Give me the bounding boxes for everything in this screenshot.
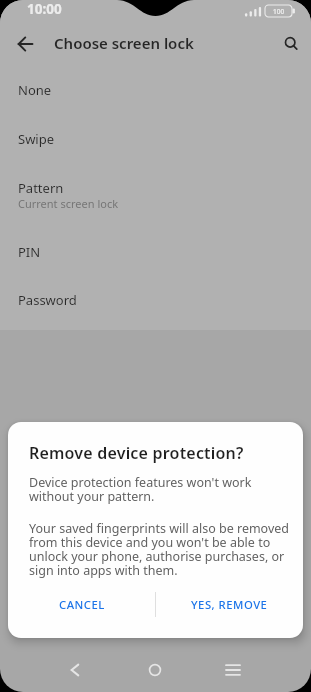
staticText: Swipe: [18, 130, 55, 148]
staticText: Device protection features won't work wi…: [29, 474, 252, 505]
staticText: YES, REMOVE: [191, 597, 268, 612]
staticText: Password: [18, 291, 77, 309]
staticText: Your saved fingerprints will also be rem…: [29, 520, 290, 579]
staticText: CANCEL: [59, 597, 105, 612]
staticText: Current screen lock: [18, 196, 119, 211]
staticText: 100: [273, 7, 285, 16]
staticText: 10:00: [27, 0, 62, 18]
staticText: None: [18, 81, 52, 99]
staticText: Remove device protection?: [29, 442, 244, 464]
staticText: Choose screen lock: [54, 33, 194, 53]
staticText: PIN: [18, 243, 41, 261]
staticText: Pattern: [18, 179, 64, 197]
